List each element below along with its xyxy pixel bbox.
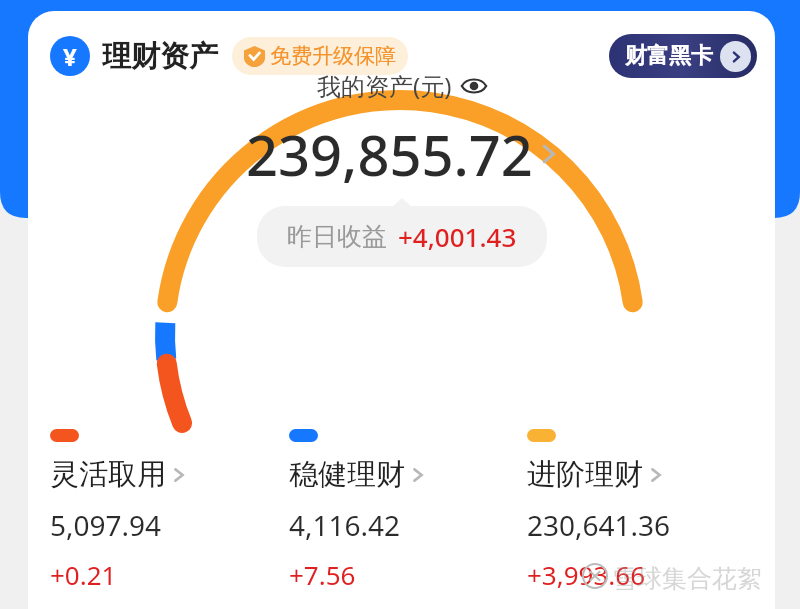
button[interactable]: 稳健理财 bbox=[289, 429, 527, 592]
staticText: +7.56 bbox=[289, 557, 356, 592]
staticText: 进阶理财 bbox=[527, 456, 643, 493]
button[interactable]: 灵活取用 bbox=[50, 429, 289, 592]
staticText: 理财资产 bbox=[102, 38, 218, 75]
staticText: 灵活取用 bbox=[50, 456, 166, 493]
button[interactable]: 239,855.72 bbox=[246, 116, 557, 192]
button[interactable]: 昨日收益 bbox=[257, 206, 547, 267]
button[interactable]: 财富黑卡 bbox=[609, 34, 757, 78]
button[interactable]: 免费升级保障 bbox=[232, 37, 408, 75]
staticText: +4,001.43 bbox=[398, 219, 517, 254]
staticText: 我的资产(元) bbox=[317, 69, 452, 102]
staticText: 230,641.36 bbox=[527, 506, 671, 544]
staticText: 免费升级保障 bbox=[270, 43, 396, 69]
staticText: 财富黑卡 bbox=[625, 42, 713, 70]
staticText: +3,993.66 bbox=[527, 557, 646, 592]
staticText: +0.21 bbox=[50, 557, 117, 592]
staticText: ¥ bbox=[63, 40, 77, 73]
button[interactable]: 进阶理财 bbox=[527, 429, 765, 592]
staticText: 稳健理财 bbox=[289, 456, 405, 493]
staticText: 5,097.94 bbox=[50, 506, 162, 544]
button[interactable]: Toggle asset visibility bbox=[317, 69, 487, 102]
staticText: 4,116.42 bbox=[289, 506, 401, 544]
staticText: 239,855.72 bbox=[246, 116, 533, 192]
staticText: 雪球集合花絮 bbox=[612, 563, 762, 594]
staticText: 昨日收益 bbox=[287, 221, 387, 252]
